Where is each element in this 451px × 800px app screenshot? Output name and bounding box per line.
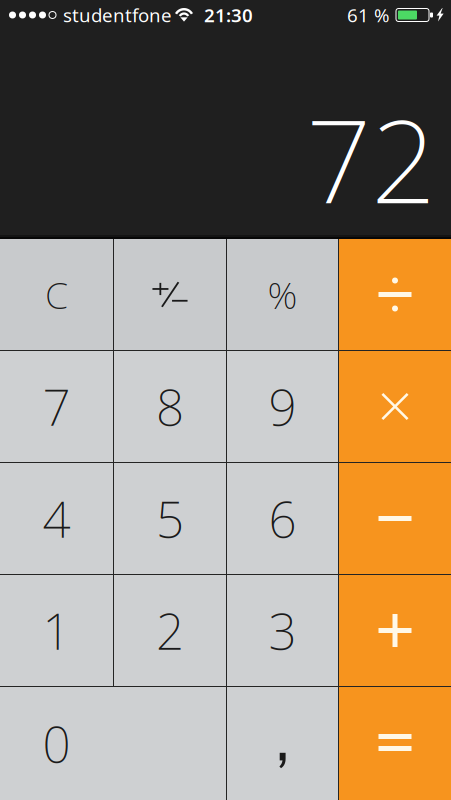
staticText: 5: [156, 486, 184, 551]
staticText: studentfone: [63, 3, 172, 27]
button[interactable]: Decimal comma: [227, 687, 338, 800]
staticText: %: [267, 270, 297, 319]
staticText: 8: [156, 374, 184, 439]
staticText: 6: [268, 486, 296, 551]
button[interactable]: %: [227, 239, 338, 350]
button[interactable]: 9: [227, 351, 338, 462]
button[interactable]: 5: [114, 463, 226, 574]
staticText: 21:30: [204, 3, 253, 27]
button[interactable]: 6: [227, 463, 338, 574]
staticText: 9: [268, 374, 296, 439]
button[interactable]: Equals: [339, 687, 451, 800]
button[interactable]: 7: [0, 351, 113, 462]
button[interactable]: 3: [227, 575, 338, 686]
staticText: 0: [42, 711, 70, 776]
button[interactable]: Plus minus: [114, 239, 226, 350]
button[interactable]: 8: [114, 351, 226, 462]
staticText: 72: [306, 83, 436, 235]
staticText: 2: [156, 598, 184, 663]
button[interactable]: 0: [0, 687, 226, 800]
button[interactable]: 4: [0, 463, 113, 574]
button[interactable]: Multiply: [339, 351, 451, 462]
staticText: 61 %: [347, 3, 390, 27]
staticText: 7: [42, 374, 70, 439]
staticText: 1: [42, 598, 70, 663]
staticText: 3: [268, 598, 296, 663]
button[interactable]: 1: [0, 575, 113, 686]
button[interactable]: Divide: [339, 239, 451, 350]
button[interactable]: 2: [114, 575, 226, 686]
button[interactable]: Add: [339, 575, 451, 686]
staticText: 4: [42, 486, 70, 551]
button[interactable]: Subtract: [339, 463, 451, 574]
staticText: C: [45, 270, 68, 319]
button[interactable]: C: [0, 239, 113, 350]
